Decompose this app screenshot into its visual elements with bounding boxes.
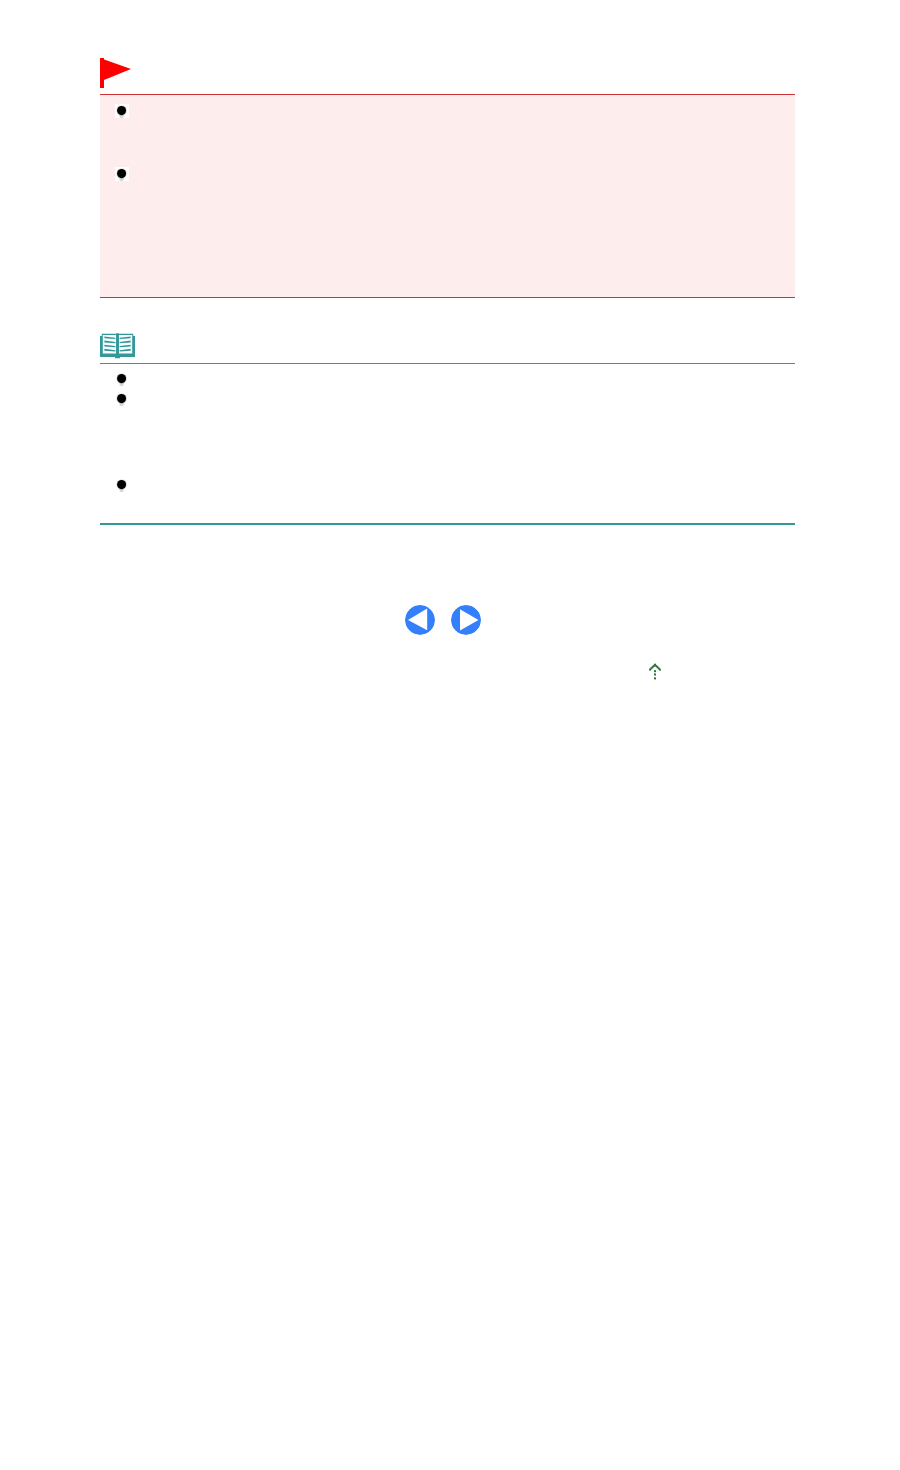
- button[interactable]: Page top: [649, 664, 661, 680]
- button[interactable]: Previous page: [405, 605, 435, 635]
- button[interactable]: Note: [100, 332, 135, 357]
- button[interactable]: Next page: [451, 605, 481, 635]
- button[interactable]: Important: [99, 57, 133, 89]
